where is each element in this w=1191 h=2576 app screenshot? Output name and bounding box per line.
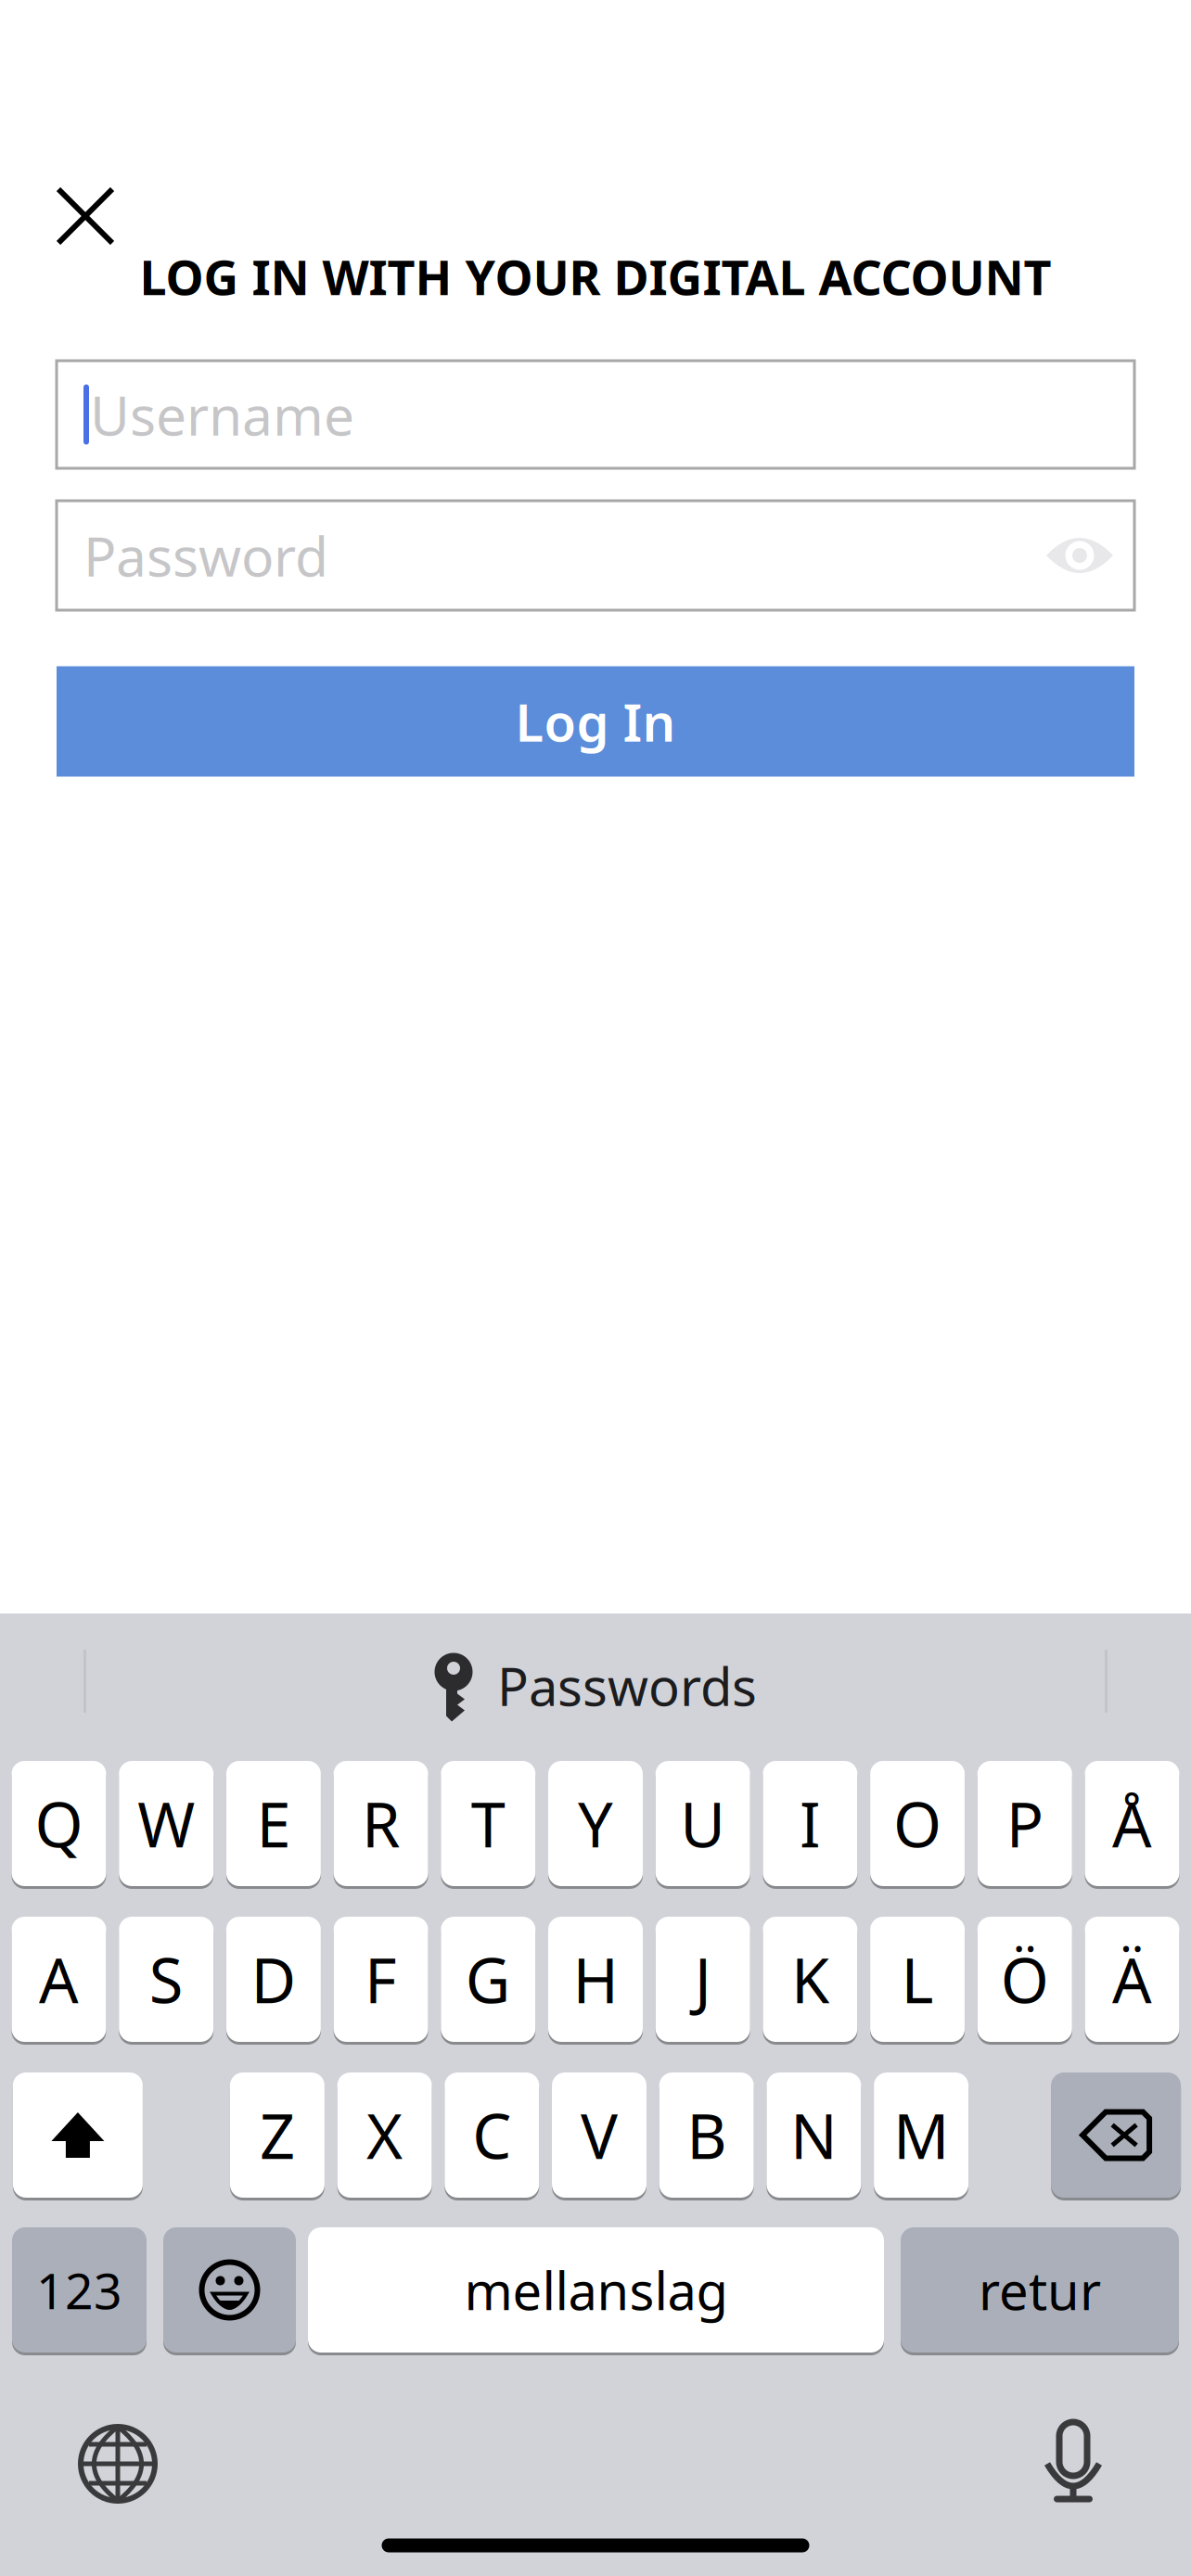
button[interactable]: Ö [977,1915,1072,2043]
button[interactable]: J [656,1915,750,2043]
button[interactable]: S [119,1915,214,2043]
button[interactable]: P [977,1760,1072,1887]
staticText: Q [35,1782,83,1864]
staticText: H [573,1938,618,2020]
staticText: P [1006,1782,1043,1864]
staticText: E [256,1782,291,1864]
button[interactable]: Z [230,2071,325,2199]
button[interactable]: U [656,1760,750,1887]
staticText: Z [260,2094,295,2176]
staticText: Y [578,1782,613,1864]
staticText: retur [979,2255,1101,2324]
staticText: Passwords [497,1651,757,1720]
staticText: 123 [36,2257,122,2323]
button[interactable]: 123 [12,2226,147,2354]
button[interactable]: Q [12,1760,106,1887]
button[interactable]: Shift [13,2071,143,2199]
button[interactable]: M [874,2071,968,2199]
staticText: S [149,1938,183,2020]
button[interactable]: A [12,1915,106,2043]
button[interactable]: F [334,1915,428,2043]
staticText: mellanslag [464,2255,728,2324]
staticText: Password [83,519,328,592]
button[interactable]: Ä [1085,1915,1179,2043]
staticText: M [893,2094,949,2176]
staticText: G [465,1938,511,2020]
staticText: Username [90,378,354,451]
button[interactable]: V [552,2071,647,2199]
staticText: W [137,1782,195,1864]
staticText: I [799,1782,821,1864]
button[interactable]: E [226,1760,321,1887]
button[interactable]: Å [1085,1760,1179,1887]
staticText: B [687,2094,726,2176]
button[interactable]: Close [34,165,136,267]
button[interactable]: B [659,2071,754,2199]
button[interactable]: T [441,1760,535,1887]
staticText: LOG IN WITH YOUR DIGITAL ACCOUNT [140,244,1051,308]
button[interactable]: Dictation [1022,2411,1124,2513]
button[interactable]: Next keyboard [67,2413,169,2515]
staticText: L [901,1938,934,2020]
button[interactable]: D [226,1915,321,2043]
staticText: Å [1112,1782,1152,1864]
staticText: R [362,1782,400,1864]
button[interactable]: X [337,2071,432,2199]
button[interactable]: retur [901,2226,1179,2354]
staticText: U [680,1782,726,1864]
staticText: Log In [515,687,676,756]
staticText: T [471,1782,505,1864]
staticText: D [251,1938,296,2020]
button[interactable]: C [445,2071,539,2199]
staticText: Ö [1001,1938,1049,2020]
button[interactable]: Show password [1035,509,1124,602]
staticText: C [472,2094,511,2176]
button[interactable]: G [441,1915,535,2043]
button[interactable]: R [334,1760,428,1887]
staticText: A [39,1938,79,2020]
staticText: F [365,1938,397,2020]
staticText: Ä [1112,1938,1152,2020]
button[interactable]: Emoji [163,2226,296,2354]
button[interactable]: K [763,1915,857,2043]
button[interactable]: I [763,1760,857,1887]
button[interactable]: L [870,1915,965,2043]
staticText: O [893,1782,942,1864]
button[interactable]: W [119,1760,214,1887]
staticText: V [581,2094,618,2176]
button[interactable]: Delete [1051,2071,1181,2199]
staticText: N [790,2094,838,2176]
button[interactable]: O [870,1760,965,1887]
button[interactable]: Log In [57,666,1134,777]
staticText: X [366,2094,403,2176]
button[interactable]: Passwords [434,1635,757,1737]
staticText: J [694,1938,711,2020]
button[interactable]: mellanslag [308,2226,884,2354]
button[interactable]: Y [548,1760,643,1887]
button[interactable]: N [767,2071,861,2199]
staticText: K [791,1938,829,2020]
button[interactable]: H [548,1915,643,2043]
